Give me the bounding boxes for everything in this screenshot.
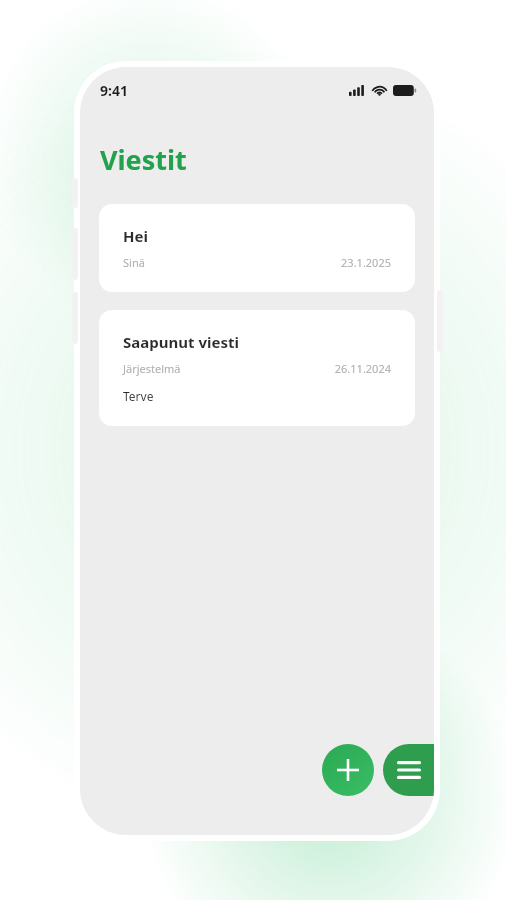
staticText: Viestit bbox=[100, 141, 187, 178]
staticText: Terve bbox=[123, 388, 154, 404]
button[interactable]: Menu bbox=[383, 744, 434, 796]
button[interactable]: New message bbox=[322, 744, 374, 796]
staticText: 26.11.2024 bbox=[334, 361, 391, 376]
staticText: Järjestelmä bbox=[123, 361, 181, 376]
staticText: Saapunut viesti bbox=[123, 332, 239, 352]
staticText: Sinä bbox=[123, 255, 145, 270]
staticText: Hei bbox=[123, 226, 148, 246]
button[interactable]: Hei bbox=[99, 204, 415, 292]
staticText: 9:41 bbox=[100, 81, 128, 100]
button[interactable]: Saapunut viesti bbox=[99, 310, 415, 426]
staticText: 23.1.2025 bbox=[341, 255, 391, 270]
